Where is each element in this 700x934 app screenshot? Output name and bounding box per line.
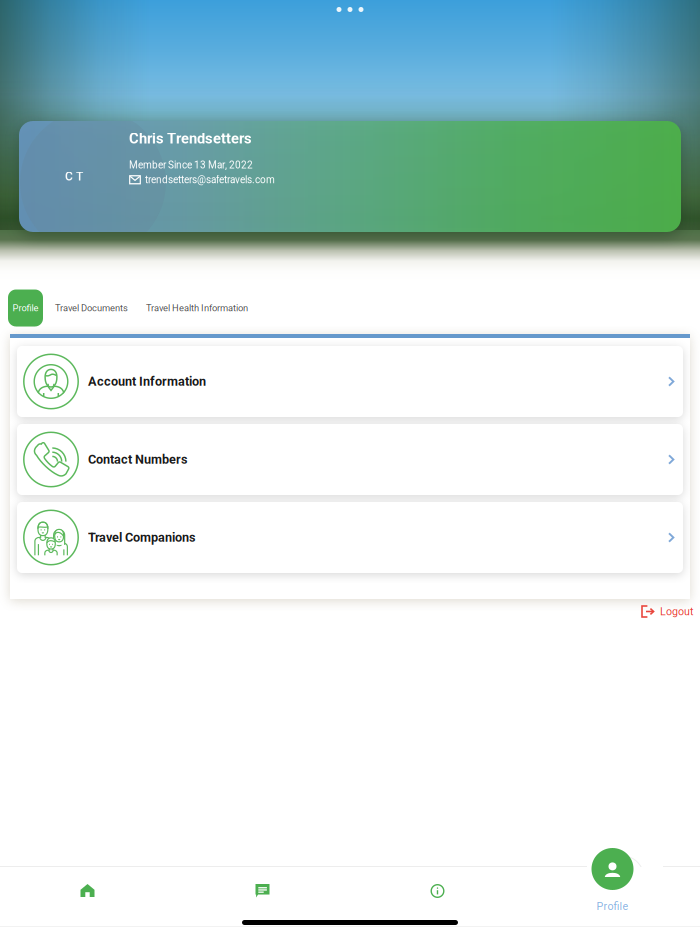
button[interactable]: Profile <box>525 842 700 928</box>
button[interactable]: Information <box>350 867 525 926</box>
staticText: Profile <box>12 302 38 313</box>
button[interactable]: Contact Numbers <box>17 424 683 495</box>
button[interactable]: Home <box>0 867 175 926</box>
button[interactable]: Profile <box>8 289 43 326</box>
staticText: C T <box>65 169 83 184</box>
staticText: Travel Health Information <box>146 302 248 313</box>
button[interactable]: Messages <box>175 867 350 926</box>
staticText: Account Information <box>88 374 206 389</box>
button[interactable]: Account Information <box>17 346 683 417</box>
staticText: Travel Companions <box>88 530 196 545</box>
staticText: Travel Documents <box>55 302 128 313</box>
button[interactable]: Travel Documents <box>49 289 134 326</box>
staticText: Chris Trendsetters <box>129 130 252 147</box>
staticText: Member Since 13 Mar, 2022 <box>129 159 253 171</box>
button[interactable]: Travel Health Information <box>140 289 254 326</box>
staticText: trendsetters@safetravels.com <box>145 174 275 186</box>
staticText: Profile <box>596 900 628 912</box>
staticText: Contact Numbers <box>88 452 188 467</box>
button[interactable]: Logout <box>637 602 697 621</box>
button[interactable]: Travel Companions <box>17 502 683 573</box>
staticText: Logout <box>660 605 693 618</box>
